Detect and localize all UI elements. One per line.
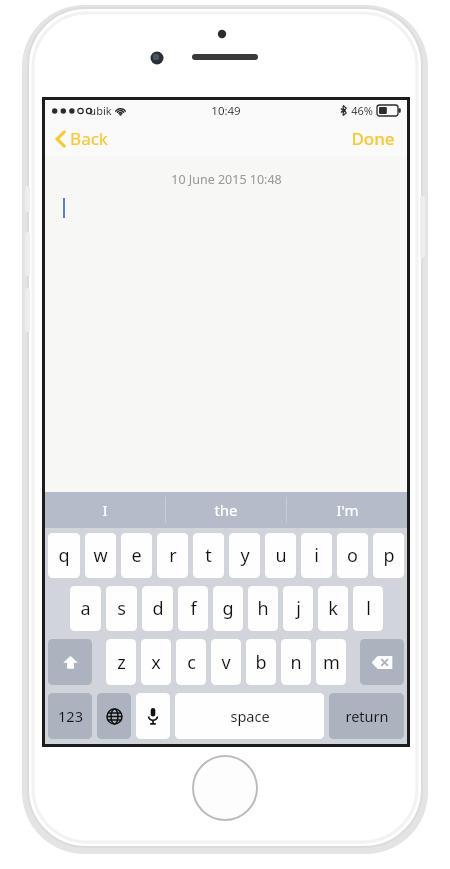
button[interactable]: z (106, 639, 136, 685)
button[interactable]: y (229, 533, 260, 578)
button[interactable]: q (48, 533, 80, 578)
button[interactable]: t (193, 533, 224, 578)
button[interactable]: Change keyboard (97, 693, 131, 739)
button[interactable]: o (337, 533, 368, 578)
button[interactable]: return (329, 693, 404, 739)
button[interactable]: b (246, 639, 276, 685)
staticText: s (117, 596, 126, 621)
staticText: w (93, 543, 108, 568)
staticText: t (205, 543, 212, 568)
staticText: u (275, 543, 287, 568)
button[interactable]: the (166, 492, 286, 528)
button[interactable]: I'm (287, 492, 407, 528)
staticText: y (240, 543, 250, 568)
staticText: n (290, 650, 302, 675)
button[interactable]: x (141, 639, 171, 685)
staticText: x (151, 650, 161, 675)
button[interactable]: I (45, 492, 165, 528)
staticText: I (102, 500, 108, 520)
staticText: the (214, 500, 238, 520)
button[interactable]: v (211, 639, 241, 685)
staticText: o (347, 543, 358, 568)
staticText: c (187, 650, 196, 675)
button[interactable]: j (283, 586, 313, 631)
button[interactable]: i (301, 533, 332, 578)
button[interactable]: e (121, 533, 152, 578)
button[interactable]: s (106, 586, 137, 631)
staticText: 46% (351, 103, 373, 118)
staticText: f (190, 596, 197, 621)
staticText: space (230, 706, 270, 726)
staticText: v (221, 650, 231, 675)
staticText: p (383, 543, 395, 568)
button[interactable]: l (353, 586, 383, 631)
button[interactable]: space (175, 693, 324, 739)
button[interactable]: Dictation (136, 693, 170, 739)
button[interactable]: m (316, 639, 346, 685)
button[interactable]: f (178, 586, 208, 631)
button[interactable]: 123 (48, 693, 92, 739)
button[interactable]: k (318, 586, 348, 631)
staticText: a (80, 596, 91, 621)
staticText: e (131, 543, 142, 568)
button[interactable]: p (373, 533, 404, 578)
staticText: 10 June 2015 10:48 (171, 171, 282, 188)
button[interactable]: w (85, 533, 116, 578)
button[interactable]: Backspace (360, 639, 404, 685)
staticText: b (255, 650, 267, 675)
staticText: q (58, 543, 70, 568)
staticText: d (152, 596, 164, 621)
button[interactable]: 10 June 2015 10:48 (45, 156, 407, 492)
staticText: 123 (58, 706, 83, 726)
staticText: i (314, 543, 319, 568)
staticText: m (323, 650, 340, 675)
button[interactable]: Shift (48, 639, 92, 685)
button[interactable]: c (176, 639, 206, 685)
button[interactable]: Back (45, 123, 118, 154)
staticText: l (366, 596, 371, 621)
staticText: Back (70, 127, 108, 150)
staticText: k (328, 596, 338, 621)
button[interactable]: Done (339, 122, 407, 155)
staticText: z (117, 650, 126, 675)
staticText: I'm (336, 500, 359, 520)
staticText: r (169, 543, 177, 568)
staticText: h (257, 596, 269, 621)
staticText: j (296, 596, 301, 621)
button[interactable]: g (213, 586, 243, 631)
staticText: Done (351, 127, 395, 150)
button[interactable]: u (265, 533, 296, 578)
staticText: g (222, 596, 234, 621)
button[interactable]: a (70, 586, 101, 631)
button[interactable]: h (248, 586, 278, 631)
button[interactable]: r (157, 533, 188, 578)
staticText: 10:49 (211, 103, 241, 119)
button[interactable]: d (142, 586, 173, 631)
staticText: return (345, 706, 389, 726)
button[interactable]: n (281, 639, 311, 685)
staticText: ubik (89, 103, 112, 118)
